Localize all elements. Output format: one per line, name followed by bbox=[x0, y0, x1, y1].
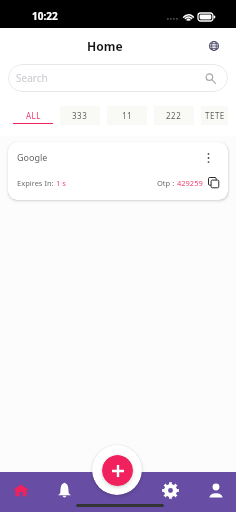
button[interactable]: Search bbox=[8, 64, 228, 92]
staticText: 222 bbox=[166, 110, 182, 121]
button[interactable]: Home bbox=[6, 476, 35, 504]
button[interactable]: More options bbox=[201, 151, 215, 165]
staticText: 11 bbox=[122, 110, 133, 121]
button[interactable]: Settings bbox=[156, 476, 185, 504]
button[interactable]: Language bbox=[203, 35, 225, 57]
button[interactable]: 222 bbox=[154, 106, 194, 125]
staticText: Expires In: bbox=[17, 178, 56, 188]
staticText: ALL bbox=[26, 110, 41, 121]
staticText: TETE bbox=[205, 110, 225, 121]
staticText: Search bbox=[16, 71, 48, 85]
button[interactable]: ALL bbox=[13, 106, 53, 124]
button[interactable]: Profile bbox=[201, 476, 230, 504]
staticText: 10:22 bbox=[32, 9, 58, 23]
staticText: 429259 bbox=[177, 178, 203, 188]
staticText: Home bbox=[87, 38, 123, 54]
staticText: Otp : bbox=[157, 178, 177, 188]
button[interactable]: Notifications bbox=[50, 476, 79, 504]
button[interactable]: TETE bbox=[201, 106, 228, 125]
button[interactable]: Add bbox=[102, 455, 133, 486]
button[interactable]: 11 bbox=[107, 106, 147, 125]
button[interactable]: Copy bbox=[207, 176, 220, 189]
staticText: Google bbox=[17, 151, 48, 163]
staticText: 1 s bbox=[56, 178, 66, 188]
staticText: 333 bbox=[72, 110, 88, 121]
button[interactable]: 333 bbox=[60, 106, 100, 125]
button[interactable]: Google bbox=[8, 142, 228, 200]
